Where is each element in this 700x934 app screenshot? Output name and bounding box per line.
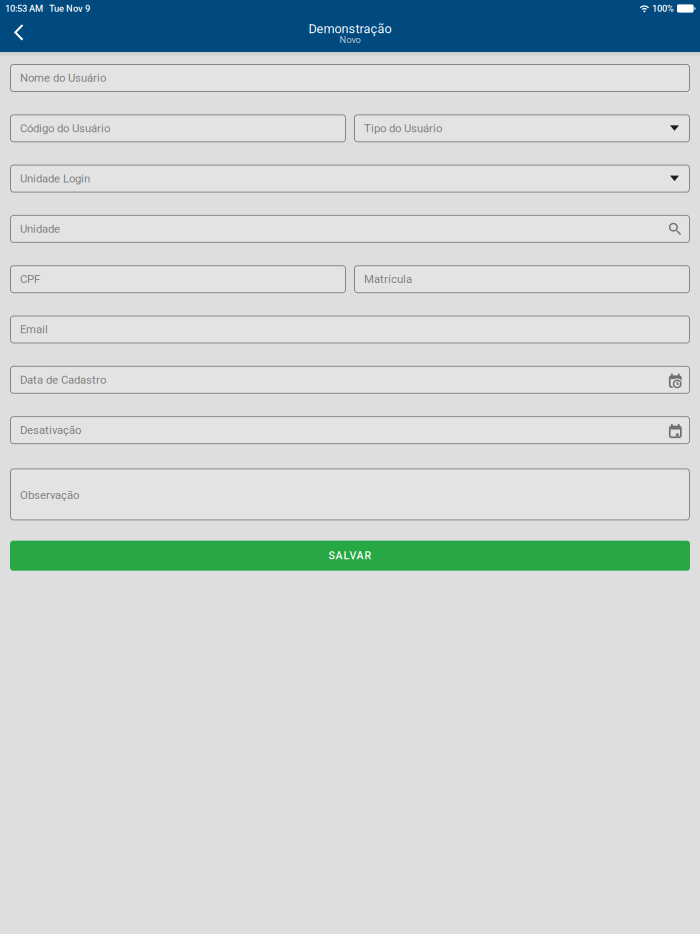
button[interactable]: Código do Usuário [10, 114, 346, 142]
staticText: 100% [650, 3, 674, 14]
staticText: Unidade [20, 222, 60, 236]
button[interactable]: Back [0, 18, 40, 51]
staticText: Tue Nov 9 [43, 3, 90, 14]
staticText: 10:53 AM [5, 3, 43, 14]
button[interactable]: Email [10, 315, 690, 343]
button[interactable]: Unidade [10, 215, 690, 243]
button[interactable]: Desativação [10, 416, 690, 444]
staticText: SALVAR [328, 549, 371, 562]
button[interactable]: SALVAR [10, 541, 690, 571]
staticText: Tipo do Usuário [364, 122, 442, 135]
button[interactable]: Nome do Usuário [10, 64, 690, 92]
staticText: Novo [339, 34, 360, 45]
staticText: Nome do Usuário [20, 71, 106, 85]
staticText: Unidade Login [20, 172, 90, 185]
staticText: Email [20, 323, 48, 336]
staticText: Código do Usuário [20, 122, 110, 135]
button[interactable]: Unidade Login [10, 165, 690, 193]
button[interactable]: Matrícula [354, 265, 690, 293]
staticText: Data de Cadastro [20, 373, 106, 386]
button[interactable]: Tipo do Usuário [354, 114, 690, 142]
staticText: Demonstração [308, 22, 391, 36]
staticText: Matrícula [364, 273, 412, 286]
staticText: CPF [20, 273, 40, 286]
button[interactable]: CPF [10, 265, 346, 293]
button[interactable]: Data de Cadastro [10, 366, 690, 394]
staticText: Desativação [20, 423, 81, 437]
staticText: Observação [20, 488, 79, 502]
button[interactable]: Observação [10, 468, 690, 520]
